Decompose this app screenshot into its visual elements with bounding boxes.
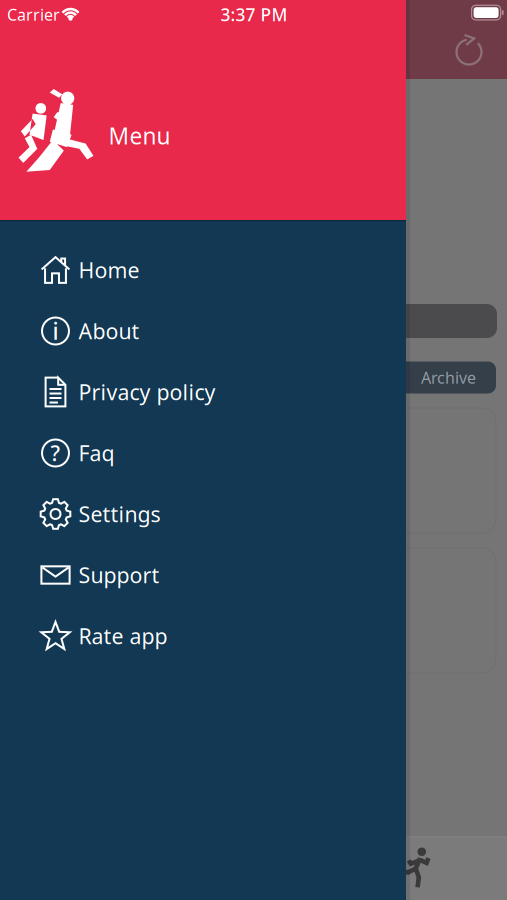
staticText: Carrier: [7, 4, 60, 25]
staticText: Rate app: [78, 622, 167, 650]
button[interactable]: Rate app: [0, 605, 406, 666]
button[interactable]: Runs: [402, 847, 432, 888]
button[interactable]: Home: [0, 239, 406, 300]
button[interactable]: ?: [0, 422, 406, 483]
staticText: Home: [78, 256, 139, 284]
button[interactable]: i: [0, 300, 406, 361]
staticText: Faq: [78, 439, 114, 467]
staticText: Archive: [421, 367, 476, 388]
button[interactable]: Refresh: [455, 38, 483, 66]
staticText: Menu: [108, 121, 170, 151]
staticText: Privacy policy: [78, 378, 215, 406]
staticText: About: [78, 317, 139, 345]
staticText: i: [52, 316, 58, 346]
staticText: Support: [78, 561, 159, 589]
button[interactable]: Support: [0, 544, 406, 605]
button[interactable]: Privacy policy: [0, 361, 406, 422]
staticText: Settings: [78, 500, 160, 528]
staticText: ?: [50, 439, 60, 467]
button[interactable]: Settings: [0, 483, 406, 544]
button[interactable]: Archive: [330, 361, 496, 393]
staticText: 3:37 PM: [220, 3, 287, 26]
